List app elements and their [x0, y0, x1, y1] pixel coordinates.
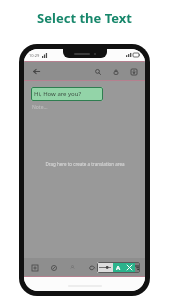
button[interactable]: Search — [92, 66, 103, 77]
staticText: Drag here to create a translation area — [45, 161, 125, 167]
button[interactable]: Account — [67, 262, 78, 273]
button[interactable]: Undo — [86, 262, 97, 273]
button[interactable]: Options — [135, 262, 140, 273]
button[interactable]: Add area — [29, 262, 40, 273]
button[interactable]: Back — [30, 65, 42, 77]
staticText: A — [116, 264, 121, 272]
button[interactable]: Hi, How are you? — [31, 87, 103, 101]
button[interactable]: Translate — [113, 262, 124, 273]
staticText: Select the Text — [37, 9, 132, 27]
button[interactable]: Lock — [110, 66, 121, 77]
button[interactable]: Save — [128, 66, 139, 77]
staticText: Hi, How are you? — [34, 90, 82, 98]
button[interactable]: Erase — [48, 262, 59, 273]
button[interactable]: Opacity slider — [97, 262, 113, 273]
staticText: Note... — [32, 104, 48, 111]
button[interactable]: Clear — [124, 262, 135, 273]
staticText: 10:29 — [29, 53, 40, 58]
